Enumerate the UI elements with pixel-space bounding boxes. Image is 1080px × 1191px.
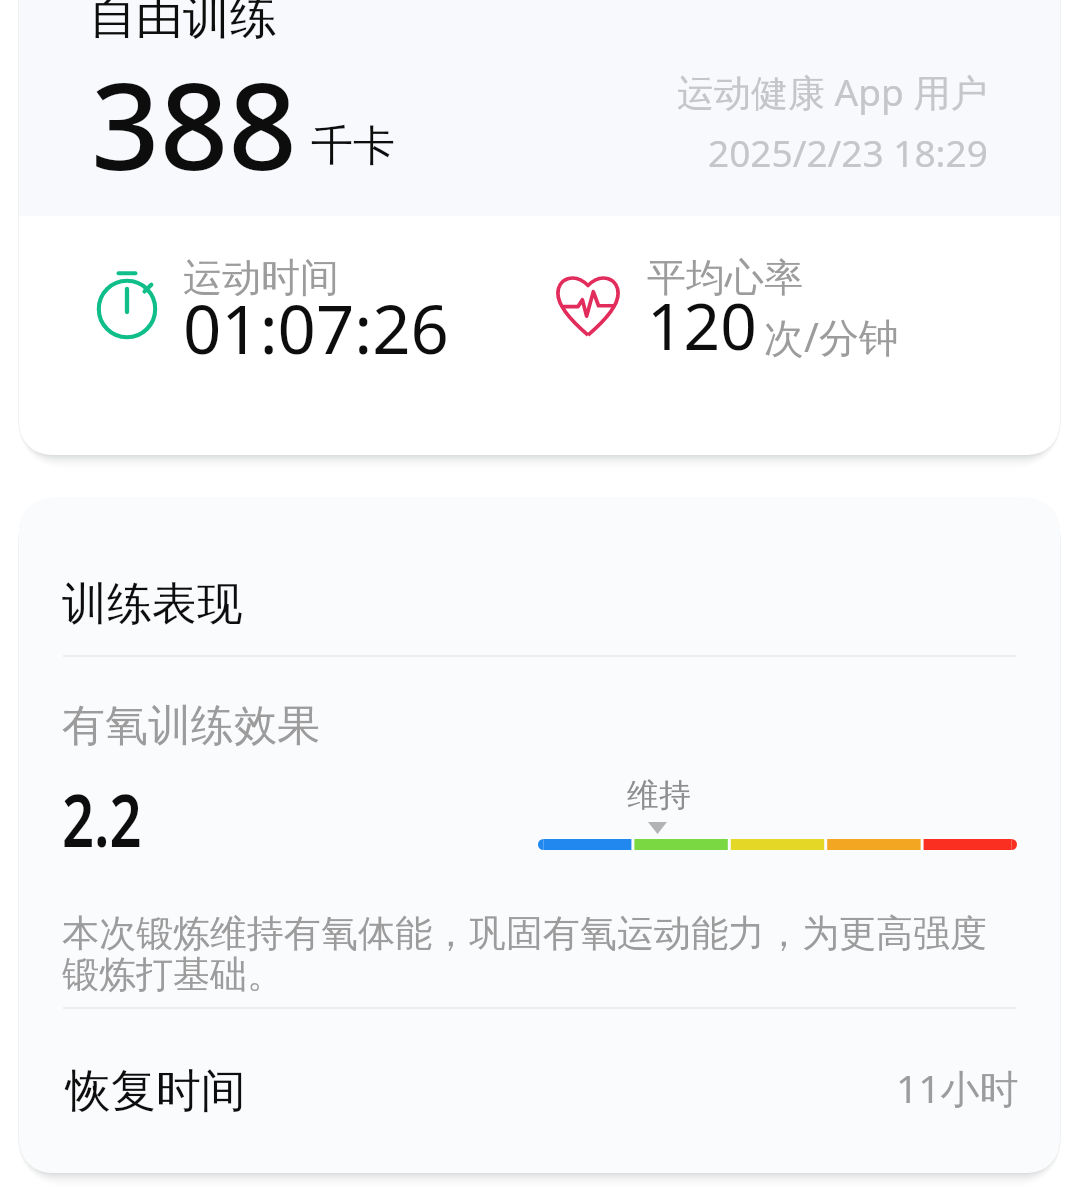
staticText: 01:07:26 [183,282,449,373]
staticText: 2.2 [62,770,142,868]
staticText: 平均心率 [647,253,803,302]
staticText: 有氧训练效果 [62,699,320,753]
staticText: 2025/2/23 18:29 [708,127,988,177]
staticText: 自由训练 [89,0,277,47]
button[interactable]: Average heart rate [556,253,899,389]
other: Workout duration [94,270,160,342]
staticText: 120 [647,282,757,369]
staticText: 388 [91,42,297,205]
staticText: 本次锻炼维持有氧体能，巩固有氧运动能力，为更高强度锻炼打基础。 [62,910,1022,998]
staticText: 训练表现 [62,576,242,633]
button[interactable]: Workout duration [94,253,449,393]
button[interactable]: 训练表现 [19,498,1060,1173]
button[interactable]: 恢复时间 [19,1009,1060,1173]
staticText: 维持 [627,775,691,815]
other: Average heart rate [556,274,620,336]
button[interactable]: 自由训练 [19,0,1060,455]
staticText: 运动时间 [183,253,339,302]
staticText: 11小时 [896,1061,1019,1114]
staticText: 恢复时间 [66,1063,246,1120]
staticText: 千卡 [311,120,395,173]
staticText: 运动健康 App 用户 [677,66,988,117]
staticText: 次/分钟 [764,309,899,364]
